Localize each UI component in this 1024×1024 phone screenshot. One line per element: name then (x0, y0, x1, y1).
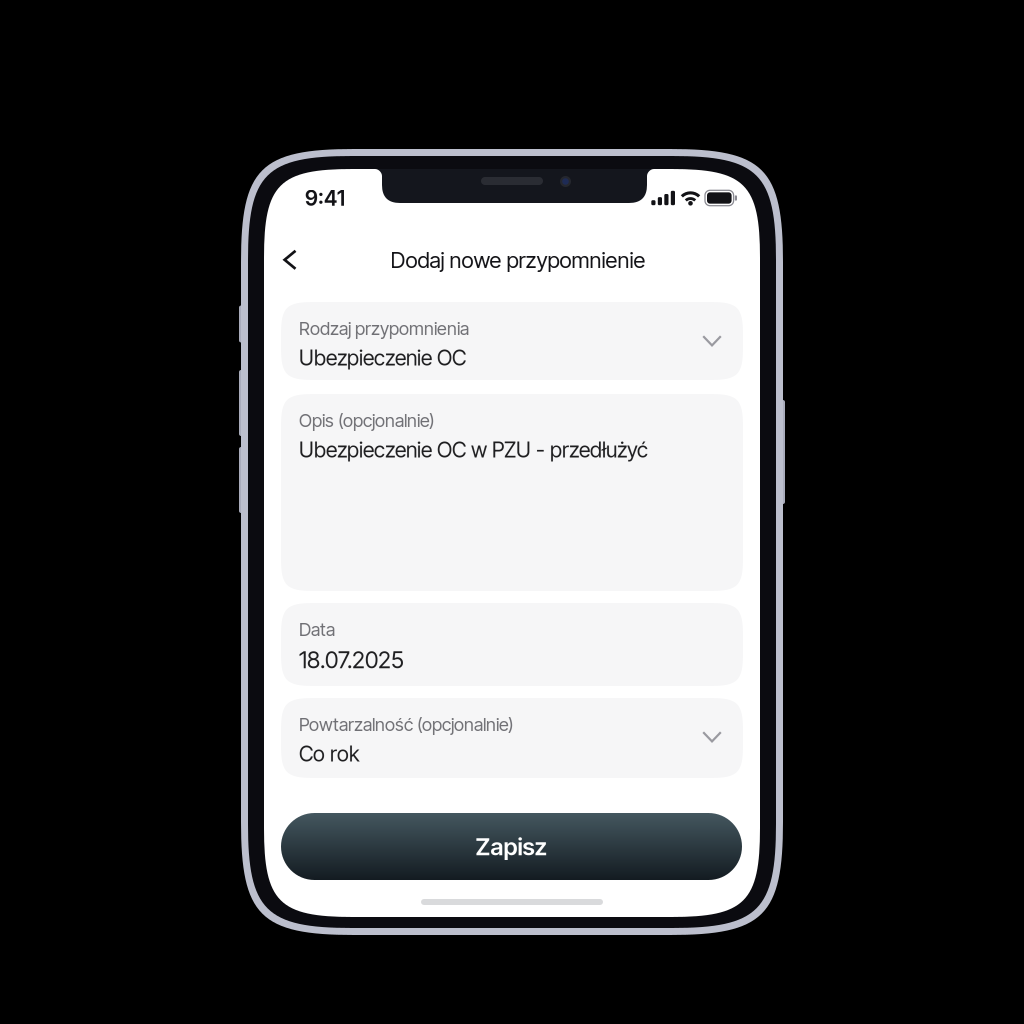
button[interactable]: Data (281, 603, 743, 686)
staticText: Co rok (299, 741, 360, 767)
staticText: Dodaj nowe przypomnienie (390, 247, 645, 273)
button[interactable]: Zapisz (281, 813, 742, 880)
staticText: Ubezpieczenie OC w PZU - przedłużyć (299, 437, 648, 463)
staticText: Data (299, 618, 335, 640)
staticText: Ubezpieczenie OC (299, 345, 466, 371)
staticText: Opis (opcjonalnie) (299, 409, 435, 431)
button[interactable]: Rodzaj przypomnienia (281, 302, 743, 380)
staticText: Rodzaj przypomnienia (299, 317, 469, 339)
button[interactable]: Powtarzalność (opcjonalnie) (281, 698, 743, 778)
staticText: Zapisz (475, 832, 547, 861)
staticText: Powtarzalność (opcjonalnie) (299, 713, 514, 735)
staticText: 18.07.2025 (299, 646, 404, 674)
button[interactable]: Back (267, 237, 313, 283)
button[interactable]: Opis (opcjonalnie) (281, 394, 743, 591)
staticText: 9:41 (305, 185, 345, 211)
